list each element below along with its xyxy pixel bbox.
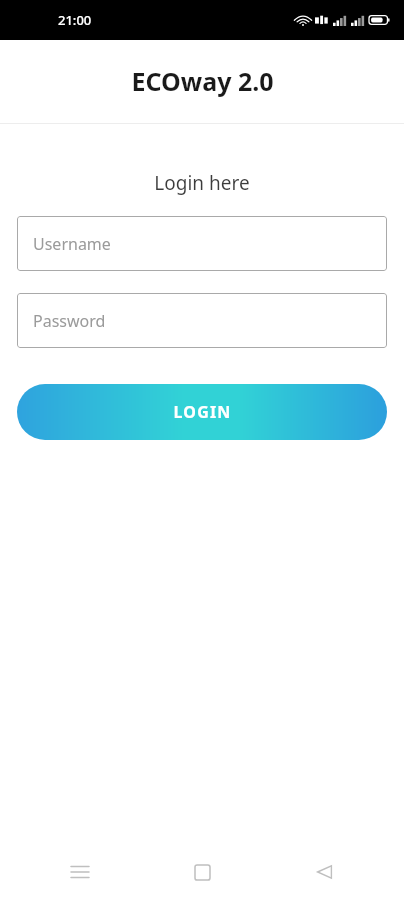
staticText: 21:00 bbox=[58, 11, 92, 29]
button[interactable]: Home bbox=[178, 848, 226, 896]
button[interactable]: LOGIN bbox=[17, 384, 387, 440]
button[interactable]: Username bbox=[17, 216, 387, 271]
staticText: ECOway 2.0 bbox=[131, 64, 274, 98]
button[interactable]: Password bbox=[17, 293, 387, 348]
staticText: LOGIN bbox=[173, 401, 232, 423]
staticText: Login here bbox=[0, 170, 404, 196]
button[interactable]: Back bbox=[300, 848, 348, 896]
staticText: Password bbox=[33, 310, 106, 332]
button[interactable]: Recent apps bbox=[56, 848, 104, 896]
staticText: Username bbox=[33, 233, 111, 255]
